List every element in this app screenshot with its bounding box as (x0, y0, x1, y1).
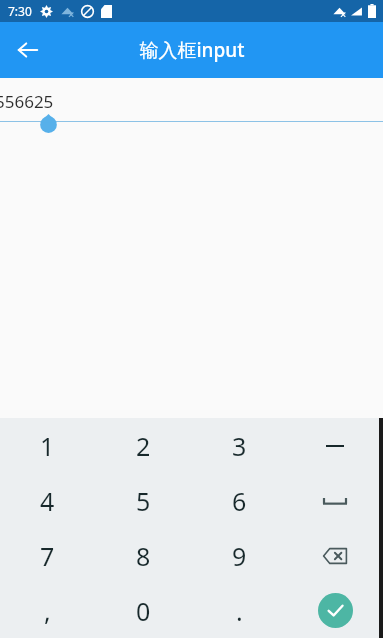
staticText: 3 (232, 429, 247, 463)
staticText: 7 (40, 539, 55, 573)
button[interactable]: 4 (0, 473, 95, 528)
button[interactable]: 2 (95, 418, 191, 473)
staticText: 7:30 (8, 3, 32, 19)
staticText: 6 (232, 484, 247, 518)
staticText: 0 (136, 594, 151, 628)
button[interactable]: Back (6, 28, 50, 72)
button[interactable]: Minus (287, 418, 383, 473)
button[interactable]: 5 (95, 473, 191, 528)
button[interactable]: Backspace (287, 528, 383, 583)
button[interactable]: 6 (191, 473, 287, 528)
button[interactable]: 7 (0, 528, 95, 583)
staticText: 4 (40, 484, 55, 518)
button[interactable]: 8 (95, 528, 191, 583)
button[interactable]: Done (287, 583, 383, 638)
staticText: 5 (136, 484, 151, 518)
staticText: , (44, 594, 51, 628)
button[interactable]: 9 (191, 528, 287, 583)
staticText: 2 (136, 429, 151, 463)
staticText: 556625 (0, 90, 54, 113)
button[interactable]: 0 (95, 583, 191, 638)
button[interactable]: Space (287, 473, 383, 528)
button[interactable]: 1 (0, 418, 95, 473)
button[interactable]: 3 (191, 418, 287, 473)
staticText: 1 (40, 429, 55, 463)
button[interactable]: , (0, 583, 95, 638)
button[interactable]: . (191, 583, 287, 638)
staticText: . (236, 594, 243, 628)
staticText: 8 (136, 539, 151, 573)
staticText: 9 (232, 539, 247, 573)
staticText: 输入框input (139, 37, 245, 63)
